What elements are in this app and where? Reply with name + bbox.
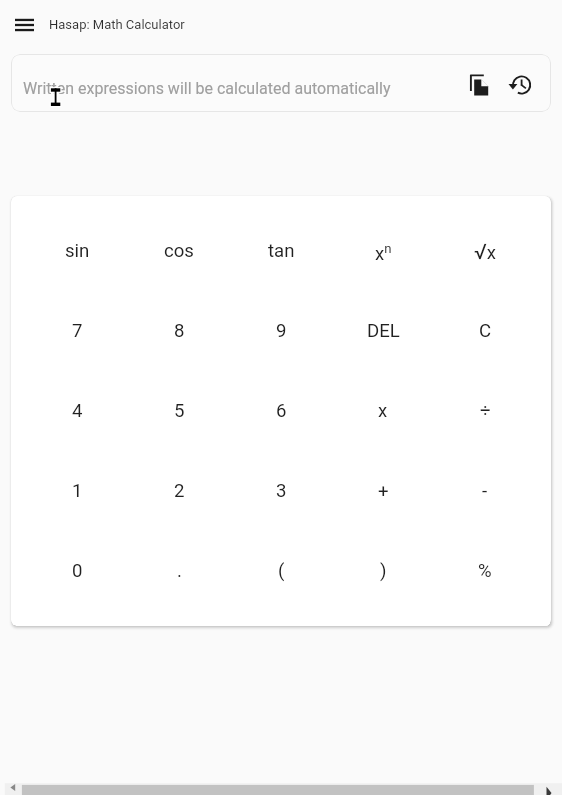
- button[interactable]: 7: [26, 291, 128, 371]
- staticText: √x: [474, 239, 497, 264]
- staticText: 2: [174, 480, 185, 502]
- staticText: (: [278, 560, 285, 582]
- button[interactable]: 9: [230, 291, 332, 371]
- staticText: .: [177, 560, 182, 582]
- staticText: -: [482, 480, 488, 502]
- button[interactable]: 0: [26, 531, 128, 611]
- staticText: tan: [268, 240, 295, 262]
- staticText: DEL: [367, 320, 400, 342]
- staticText: 3: [276, 480, 287, 502]
- staticText: ÷: [480, 400, 491, 422]
- button[interactable]: 1: [26, 451, 128, 531]
- staticText: C: [479, 320, 492, 342]
- button[interactable]: C: [434, 291, 536, 371]
- staticText: 5: [174, 400, 185, 422]
- staticText: 7: [72, 320, 83, 342]
- staticText: 8: [174, 320, 185, 342]
- staticText: %: [478, 560, 492, 582]
- button[interactable]: 5: [128, 371, 230, 451]
- button[interactable]: cos: [128, 211, 230, 291]
- button[interactable]: ÷: [434, 371, 536, 451]
- staticText: 6: [276, 400, 287, 422]
- staticText: 0: [72, 560, 83, 582]
- staticText: xn: [375, 241, 392, 264]
- button[interactable]: Menu: [9, 9, 40, 40]
- button[interactable]: -: [434, 451, 536, 531]
- button[interactable]: Copy: [462, 68, 492, 98]
- button[interactable]: History: [505, 68, 535, 98]
- staticText: 1: [72, 480, 83, 502]
- button[interactable]: ): [332, 531, 434, 611]
- button[interactable]: (: [230, 531, 332, 611]
- button[interactable]: √x: [434, 211, 536, 291]
- button[interactable]: 2: [128, 451, 230, 531]
- button[interactable]: 8: [128, 291, 230, 371]
- button[interactable]: x: [332, 371, 434, 451]
- staticText: 4: [72, 400, 83, 422]
- staticText: Written expressions will be calculated a…: [23, 79, 391, 98]
- button[interactable]: %: [434, 531, 536, 611]
- staticText: 9: [276, 320, 287, 342]
- staticText: +: [378, 480, 389, 502]
- button[interactable]: xn: [332, 211, 434, 291]
- button[interactable]: sin: [26, 211, 128, 291]
- button[interactable]: 4: [26, 371, 128, 451]
- staticText: cos: [164, 240, 194, 262]
- button[interactable]: Written expressions will be calculated a…: [11, 54, 551, 112]
- button[interactable]: 6: [230, 371, 332, 451]
- button[interactable]: 3: [230, 451, 332, 531]
- staticText: Hasap: Math Calculator: [49, 17, 185, 32]
- button[interactable]: .: [128, 531, 230, 611]
- button[interactable]: tan: [230, 211, 332, 291]
- staticText: x: [378, 400, 388, 422]
- staticText: ): [380, 560, 387, 582]
- staticText: sin: [65, 240, 90, 262]
- button[interactable]: +: [332, 451, 434, 531]
- button[interactable]: DEL: [332, 291, 434, 371]
